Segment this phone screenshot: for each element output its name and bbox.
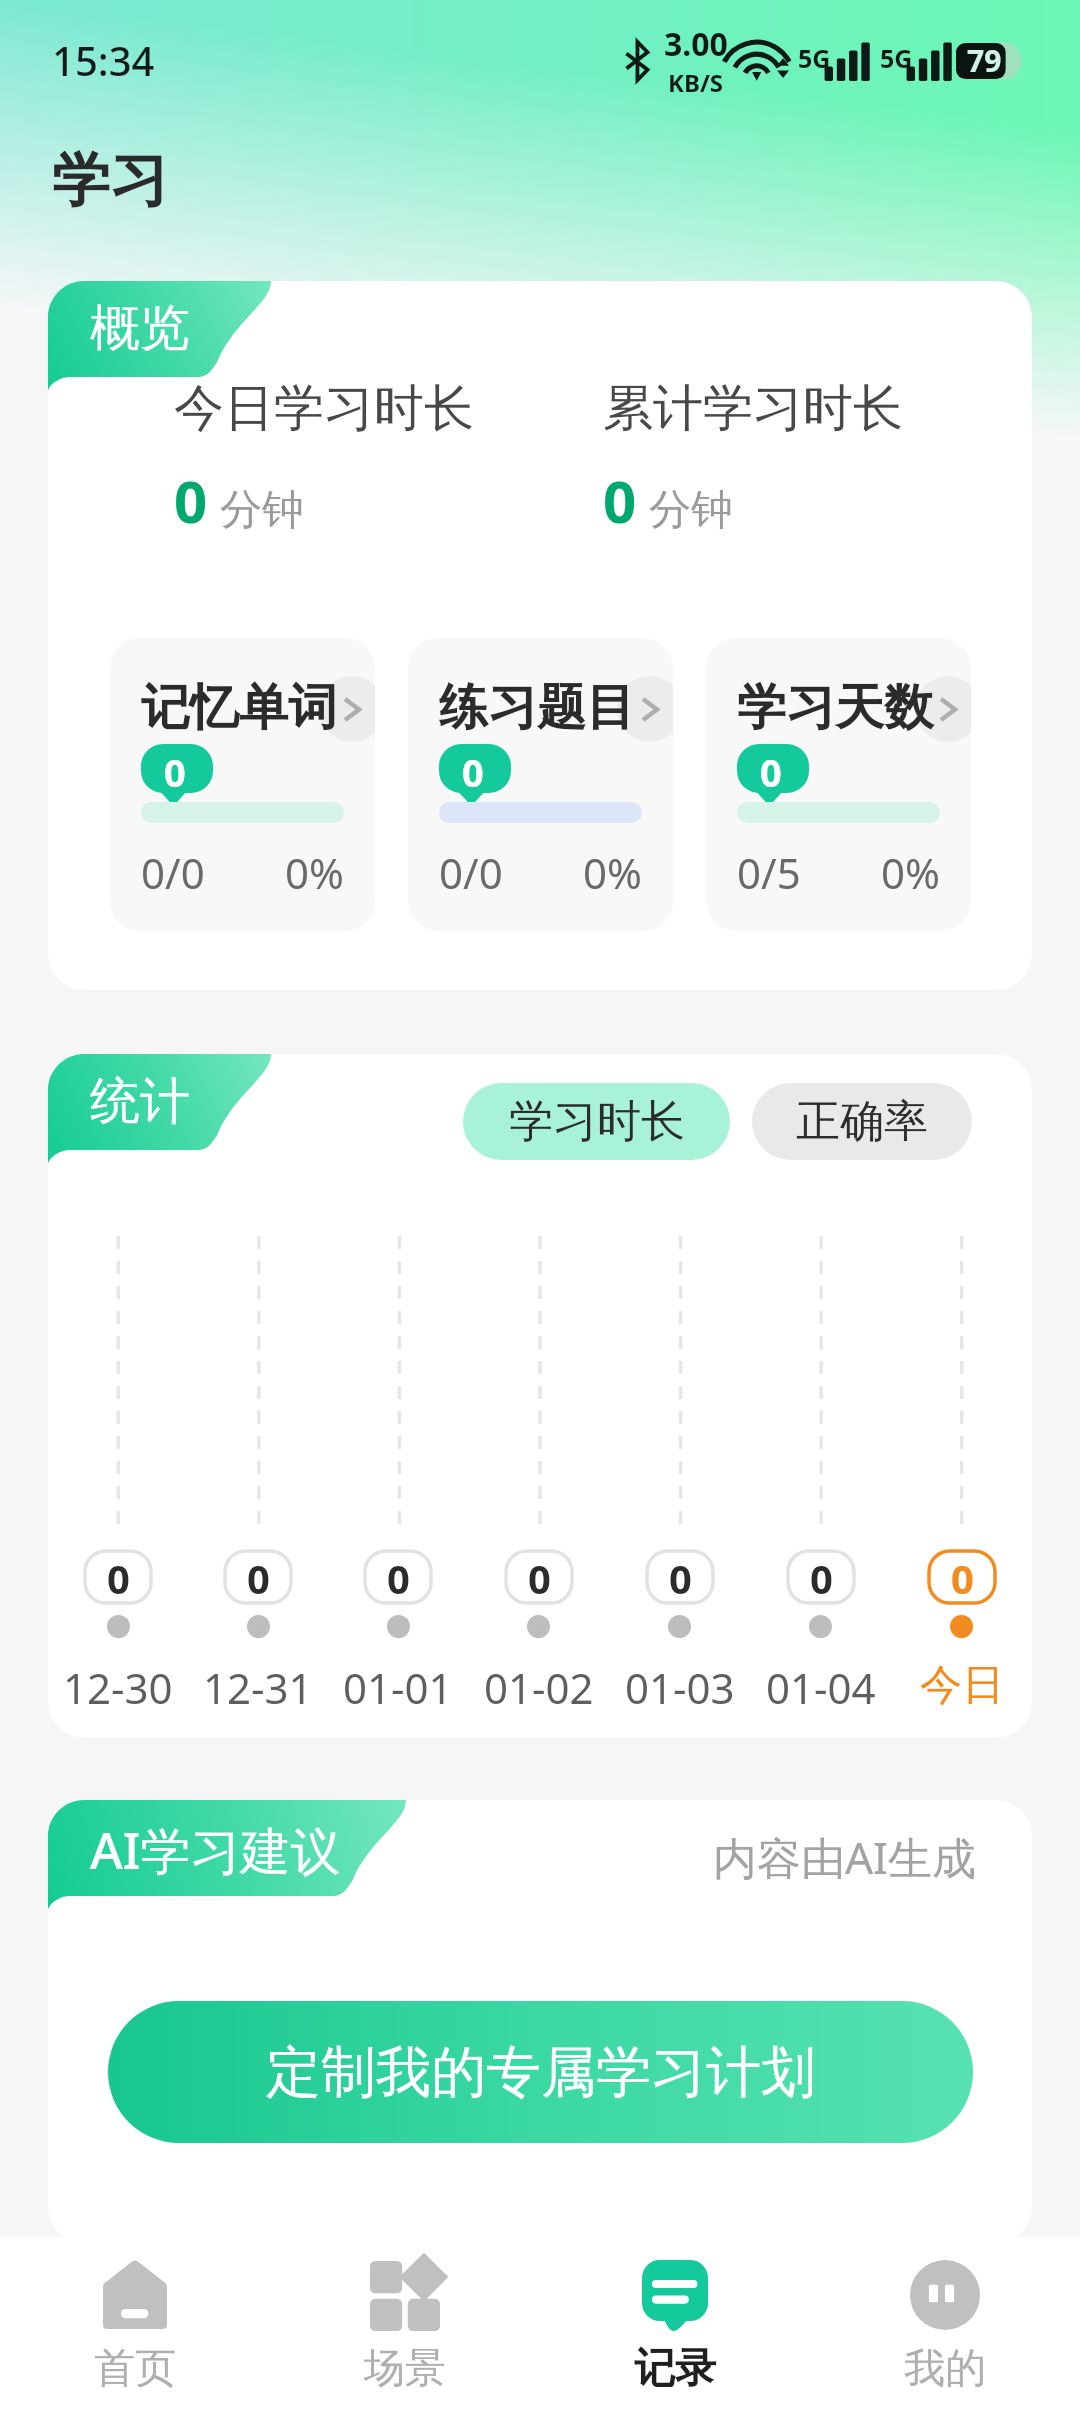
staticText: 15:34 [52,33,155,87]
staticText: 3.00 [664,22,728,66]
staticText: 0 [387,1551,410,1603]
staticText: 0/5 [737,844,801,901]
staticText: 学习时长 [509,1094,685,1149]
other: 场景 [370,2261,440,2330]
staticText: 0 [760,746,782,798]
staticText: 0 [107,1551,130,1603]
staticText: 0 [810,1551,833,1603]
staticText: 定制我的专属学习计划 [266,2038,816,2107]
button[interactable]: 记忆单词 [110,638,375,931]
staticText: 今日 [920,1659,1004,1712]
staticText: 概览 [90,297,190,360]
staticText: 0 [951,1551,974,1603]
staticText: 0 [174,461,208,540]
staticText: 0 [247,1551,270,1603]
staticText: 01-02 [484,1659,594,1716]
staticText: 内容由AI生成 [713,1827,977,1887]
staticText: 5G [880,41,913,75]
staticText: 5G [798,41,831,75]
button[interactable]: 定制我的专属学习计划 [108,2001,973,2143]
staticText: 0 [528,1551,551,1603]
staticText: 场景 [364,2343,446,2395]
staticText: 01-03 [625,1659,735,1716]
staticText: 01-01 [343,1659,453,1716]
staticText: 0 [462,746,484,798]
staticText: 记忆单词 [141,677,337,739]
staticText: 0 [164,746,186,798]
other: 我的 [910,2260,980,2330]
staticText: 今日学习时长 [174,377,474,440]
staticText: 01-04 [766,1659,876,1716]
staticText: 首页 [94,2343,176,2395]
staticText: 12-31 [203,1659,313,1716]
staticText: 0/0 [439,844,503,901]
staticText: 79 [967,40,1002,81]
button[interactable]: 学习时长 [463,1083,730,1160]
staticText: 0/0 [141,844,205,901]
button[interactable]: 正确率 [752,1083,972,1160]
staticText: 记录 [634,2343,716,2395]
staticText: AI学习建议 [90,1816,341,1884]
button[interactable]: 首页 [0,2237,270,2412]
staticText: 0% [583,844,642,901]
button[interactable]: 练习题目 [408,638,673,931]
button[interactable]: 记录 [540,2237,810,2412]
staticText: 学习 [52,144,168,217]
staticText: 正确率 [796,1094,928,1149]
staticText: 统计 [90,1070,190,1133]
staticText: 0% [881,844,940,901]
staticText: 0 [669,1551,692,1603]
staticText: 累计学习时长 [603,377,903,440]
staticText: 0% [285,844,344,901]
staticText: 分钟 [649,484,733,537]
button[interactable]: 我的 [810,2237,1080,2412]
staticText: 我的 [904,2343,986,2395]
other: 首页 [103,2262,167,2329]
staticText: KB/S [668,66,724,99]
other: 记录 [642,2260,708,2331]
staticText: 12-30 [63,1659,173,1716]
staticText: 分钟 [220,484,304,537]
button[interactable]: 学习天数 [706,638,971,931]
staticText: 学习天数 [737,677,933,739]
button[interactable]: 场景 [270,2237,540,2412]
staticText: 0 [603,461,637,540]
staticText: 练习题目 [439,677,635,739]
